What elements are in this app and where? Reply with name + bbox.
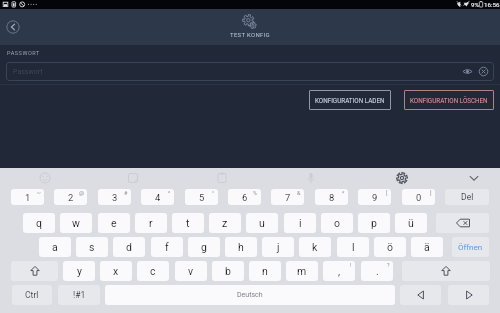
button[interactable]: 6 [228,189,261,205]
button[interactable]: n [249,261,281,281]
staticText: c [150,265,156,277]
staticText: 0 [416,192,422,203]
button[interactable]: h [225,237,257,257]
button[interactable]: 9 [358,189,391,205]
button[interactable]: m [286,261,318,281]
staticText: i [299,217,302,229]
staticText: , [338,265,341,277]
button[interactable]: ü [395,213,427,233]
button[interactable]: Shift [11,261,58,281]
staticText: % [253,190,258,196]
staticText: @ [79,190,84,196]
staticText: Del [461,192,474,202]
button[interactable]: l [337,237,369,257]
staticText: 9 [372,192,378,203]
button[interactable]: Hide keyboard [466,168,482,187]
button[interactable]: !#1 [58,285,100,305]
staticText: b [225,265,231,277]
button[interactable]: Show password [462,66,473,77]
button[interactable]: . [361,261,393,281]
button[interactable]: s [76,237,108,257]
staticText: . [376,265,379,277]
staticText: ü [408,217,414,229]
button[interactable]: i [284,213,316,233]
staticText: 2 [68,192,74,203]
button[interactable]: x [100,261,132,281]
staticText: 8 [329,192,335,203]
button[interactable]: KONFIGURATION LADEN [309,90,391,110]
button[interactable]: Shift [402,261,490,281]
staticText: Deutsch [237,291,263,299]
button[interactable]: v [175,261,207,281]
staticText: Ctrl [25,290,39,300]
button[interactable]: Emoji [36,168,54,187]
button[interactable]: Voice input [302,168,320,187]
staticText: y [77,265,82,277]
button[interactable]: Clear text [478,66,489,77]
staticText: ä [424,241,430,253]
button[interactable]: KONFIGURATION LÖSCHEN [404,90,494,110]
button[interactable]: Keyboard settings [393,168,411,187]
button[interactable]: e [98,213,130,233]
staticText: j [277,241,280,253]
button[interactable]: k [299,237,331,257]
button[interactable]: 7 [271,189,304,205]
button[interactable]: Move cursor left [400,285,441,305]
button[interactable]: 5 [185,189,218,205]
button[interactable]: Passwort [6,62,494,81]
button[interactable]: j [262,237,294,257]
button[interactable]: Clipboard [213,168,231,187]
button[interactable]: 3 [98,189,131,205]
button[interactable]: u [246,213,278,233]
staticText: ! [350,262,352,268]
button[interactable]: t [172,213,204,233]
staticText: f [165,241,169,253]
staticText: [ [386,190,388,196]
staticText: ? [387,262,390,268]
button[interactable]: Move cursor right [448,285,489,305]
button[interactable]: ö [374,237,406,257]
button[interactable]: f [151,237,183,257]
staticText: q [36,217,42,229]
button[interactable]: Space [105,285,395,305]
button[interactable]: r [135,213,167,233]
button[interactable]: d [113,237,145,257]
button[interactable]: p [358,213,390,233]
button[interactable]: 1 [11,189,44,205]
button[interactable]: o [321,213,353,233]
staticText: n [262,265,268,277]
button[interactable]: c [137,261,169,281]
button[interactable]: 0 [402,189,435,205]
staticText: 5 [199,192,205,203]
staticText: m [297,265,307,277]
button[interactable]: Back [6,20,20,34]
button[interactable]: 4 [141,189,174,205]
staticText: 16:56 [484,1,500,8]
button[interactable]: y [63,261,95,281]
button[interactable]: Del [445,189,489,205]
staticText: ö [387,241,393,253]
button[interactable]: Backspace [436,213,489,233]
staticText: Öffnen [458,243,483,252]
button[interactable]: a [39,237,71,257]
button[interactable]: z [209,213,241,233]
button[interactable]: Stickers [124,168,142,187]
staticText: PASSWORT [7,50,40,57]
staticText: # [124,190,128,196]
staticText: ] [430,190,432,196]
button[interactable]: Öffnen [452,237,489,257]
button[interactable]: Ctrl [12,285,52,305]
button[interactable]: q [23,213,55,233]
button[interactable]: 2 [54,189,87,205]
button[interactable]: b [212,261,244,281]
staticText: a [52,241,58,253]
button[interactable]: , [323,261,355,281]
staticText: !#1 [73,290,86,300]
staticText: r [149,217,153,229]
button[interactable]: ä [411,237,443,257]
button[interactable]: 8 [315,189,348,205]
button[interactable]: g [188,237,220,257]
staticText: KONFIGURATION LADEN [315,97,385,104]
staticText: z [222,217,228,229]
button[interactable]: w [60,213,92,233]
